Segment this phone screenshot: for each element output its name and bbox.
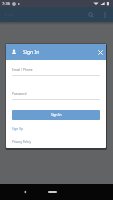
button[interactable]: Email / Phone bbox=[12, 64, 100, 75]
staticText: 7:36 bbox=[2, 1, 10, 6]
button[interactable]: Back bbox=[16, 184, 34, 200]
button[interactable]: Sign In bbox=[12, 110, 100, 120]
button[interactable]: Password bbox=[12, 88, 100, 99]
button[interactable]: Close bbox=[94, 46, 106, 58]
staticText: Password bbox=[12, 92, 27, 96]
staticText: Sign In bbox=[51, 113, 62, 117]
staticText: Sign In bbox=[23, 49, 40, 56]
staticText: Sign Up bbox=[12, 127, 23, 131]
button[interactable]: Privacy Policy bbox=[12, 138, 31, 145]
button[interactable]: Sign Up bbox=[12, 125, 23, 132]
staticText: Email / Phone bbox=[12, 68, 33, 72]
button[interactable]: Search bbox=[84, 8, 98, 22]
button[interactable]: Home bbox=[42, 184, 62, 200]
button[interactable]: More options bbox=[98, 8, 112, 22]
staticText: Privacy Policy bbox=[12, 140, 31, 144]
